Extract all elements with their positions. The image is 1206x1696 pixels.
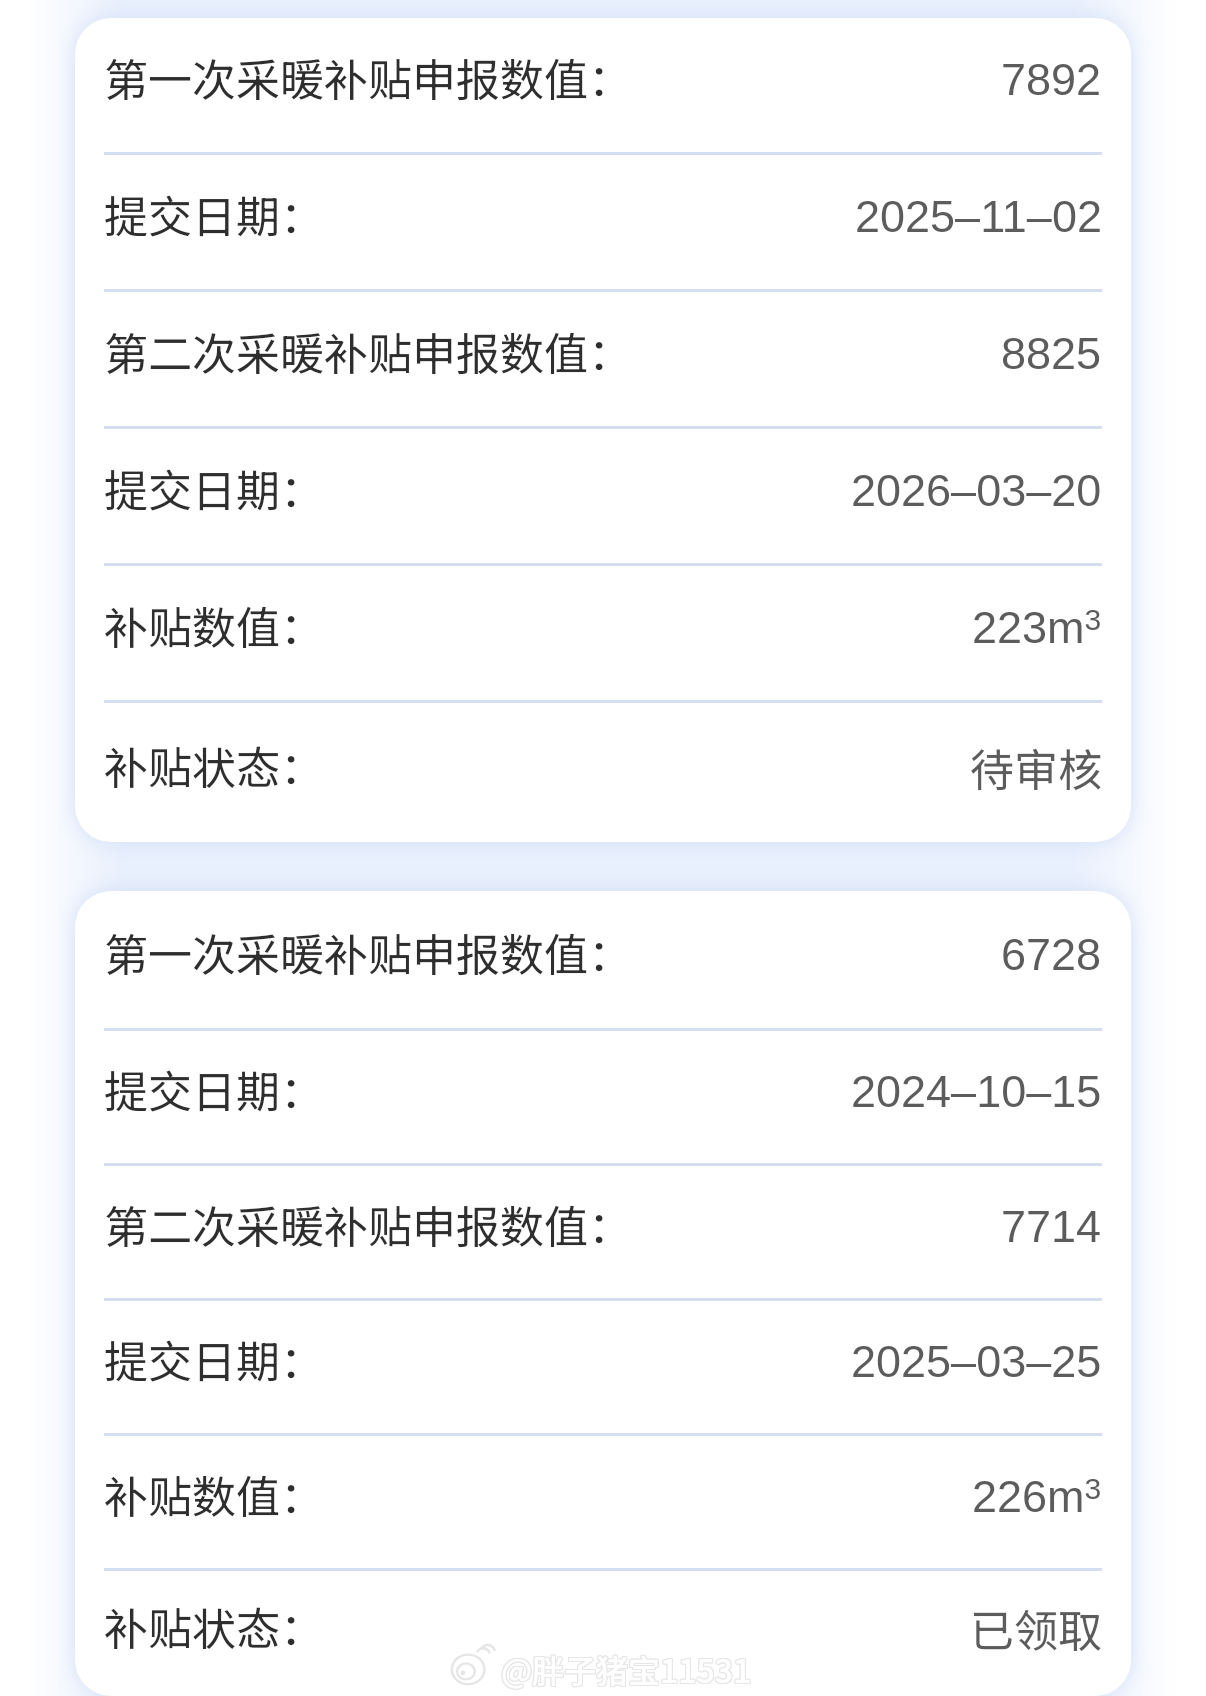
staticText: 6728 — [1001, 929, 1102, 979]
staticText: 提交日期： — [104, 1057, 324, 1121]
button[interactable]: 提交日期： — [75, 155, 1131, 289]
button[interactable]: 提交日期： — [75, 1301, 1131, 1433]
staticText: 2025–11–02 — [855, 191, 1102, 241]
staticText: @胖子猪宝11531 — [501, 1645, 752, 1691]
staticText: 待审核 — [970, 735, 1102, 799]
staticText: @胖子猪宝11531 — [500, 1645, 751, 1691]
staticText: 2025–03–25 — [851, 1336, 1102, 1386]
staticText: @胖子猪宝11531 — [500, 1646, 751, 1692]
staticText: @胖子猪宝11531 — [501, 1647, 752, 1693]
button[interactable]: 补贴数值： — [75, 1436, 1131, 1568]
staticText: 8825 — [1001, 328, 1102, 378]
staticText: 提交日期： — [104, 182, 324, 246]
staticText: 7892 — [1001, 54, 1102, 104]
staticText: 提交日期： — [104, 1327, 324, 1391]
staticText: 补贴状态： — [104, 1594, 324, 1658]
button[interactable]: 补贴状态： — [75, 703, 1131, 842]
staticText: 2024–10–15 — [851, 1066, 1102, 1116]
staticText: 第一次采暖补贴申报数值： — [104, 45, 632, 109]
staticText: @胖子猪宝11531 — [502, 1647, 753, 1693]
staticText: 第二次采暖补贴申报数值： — [104, 1192, 632, 1256]
button[interactable]: 第一次采暖补贴申报数值： — [75, 891, 1131, 1028]
staticText: 7714 — [1001, 1201, 1102, 1251]
button[interactable]: 提交日期： — [75, 1031, 1131, 1163]
staticText: 第二次采暖补贴申报数值： — [104, 319, 632, 383]
staticText: 已领取 — [970, 1596, 1102, 1660]
button[interactable]: 提交日期： — [75, 429, 1131, 563]
staticText: 补贴状态： — [104, 733, 324, 797]
staticText: 223m3 — [972, 602, 1102, 652]
button[interactable]: 第二次采暖补贴申报数值： — [75, 1166, 1131, 1298]
staticText: @胖子猪宝11531 — [500, 1647, 751, 1693]
staticText: @胖子猪宝11531 — [502, 1645, 753, 1691]
staticText: 补贴数值： — [104, 1462, 324, 1526]
staticText: @胖子猪宝11531 — [501, 1646, 752, 1692]
staticText: @胖子猪宝11531 — [502, 1646, 753, 1692]
staticText: 补贴数值： — [104, 593, 324, 657]
button[interactable]: 第二次采暖补贴申报数值： — [75, 292, 1131, 426]
button[interactable]: 补贴状态： — [75, 1571, 1131, 1696]
button[interactable]: 补贴数值： — [75, 566, 1131, 700]
staticText: 226m3 — [972, 1471, 1102, 1521]
staticText: 第一次采暖补贴申报数值： — [104, 920, 632, 984]
staticText: 提交日期： — [104, 456, 324, 520]
staticText: 2026–03–20 — [851, 465, 1102, 515]
button[interactable]: 第一次采暖补贴申报数值： — [75, 18, 1131, 152]
